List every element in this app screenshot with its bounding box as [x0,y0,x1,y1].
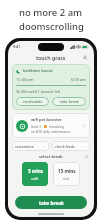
staticText: take break [60,99,79,104]
staticText: touch grass [36,54,66,61]
staticText: bedtime boost [23,68,53,74]
staticText: 11:30 pm [16,77,34,82]
button[interactable]: wifi pet booster [12,113,90,138]
staticText: reschedule [23,99,43,104]
staticText: screentime [15,144,34,149]
button[interactable]: screentime [12,141,49,151]
staticText: on 8:00 daily maintenance [31,130,71,134]
staticText: check feeds [55,144,75,149]
staticText: select break [39,154,63,159]
staticText: doomscrolling [19,20,84,33]
button[interactable]: 15 mins [53,162,80,186]
staticText: level 3 [31,124,42,129]
staticText: 6:00 am [71,77,86,82]
staticText: 9:41 [13,44,21,49]
button[interactable]: More [82,124,86,128]
button[interactable]: Close [84,154,89,159]
button[interactable]: take break [15,196,87,209]
button[interactable]: bedtime boost [12,64,90,110]
staticText: 15 mins [58,168,76,174]
button[interactable]: 5 mins [22,162,48,186]
staticText: streaking [49,124,64,129]
staticText: walk [31,176,39,181]
staticText: no more 2 am [19,6,83,19]
staticText: rest [63,176,70,181]
staticText: 5 mins [28,168,43,174]
staticText: wifi pet booster [31,117,62,122]
button[interactable]: check feeds [52,141,90,151]
button[interactable]: Profile [81,54,89,62]
button[interactable]: take break [52,97,86,106]
staticText: 3h 20m with 1 booster left [16,89,61,94]
staticText: take break [39,200,64,206]
button[interactable]: reschedule [16,97,49,106]
